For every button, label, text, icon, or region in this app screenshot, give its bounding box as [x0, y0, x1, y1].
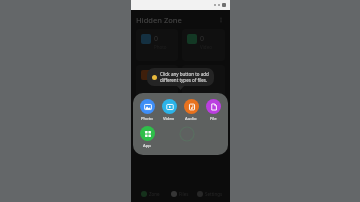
staticText: Click any button to add [160, 71, 209, 77]
button[interactable]: Audio card [136, 65, 178, 97]
staticText: 0 [154, 34, 159, 44]
button[interactable]: More options [217, 16, 225, 24]
staticText: Settings [205, 191, 223, 197]
button[interactable]: Photo [138, 99, 156, 122]
staticText: Photo [141, 116, 153, 122]
button[interactable]: Video [160, 99, 178, 122]
button[interactable]: Photo card [136, 29, 178, 61]
button[interactable]: Zone [136, 186, 165, 202]
button[interactable]: App [138, 126, 156, 149]
staticText: 0 [200, 70, 205, 80]
staticText: Files [179, 191, 189, 197]
button[interactable]: Audio [182, 99, 200, 122]
staticText: Video [200, 44, 212, 50]
button[interactable]: Settings [195, 186, 225, 202]
staticText: File [200, 80, 208, 86]
staticText: Audio [154, 80, 167, 86]
button[interactable]: Files [165, 186, 195, 202]
staticText: Zone [149, 191, 160, 197]
staticText: App [143, 143, 151, 149]
staticText: 0 [200, 34, 205, 44]
staticText: Video [163, 116, 175, 122]
button[interactable]: Video card [182, 29, 225, 61]
staticText: Audio [185, 116, 197, 122]
staticText: different types of files. [160, 77, 208, 83]
staticText: Hidden Zone [136, 15, 182, 25]
button[interactable]: File [204, 99, 222, 122]
staticText: 0 [154, 70, 159, 80]
staticText: File [210, 116, 217, 122]
button[interactable]: File card [182, 65, 225, 97]
